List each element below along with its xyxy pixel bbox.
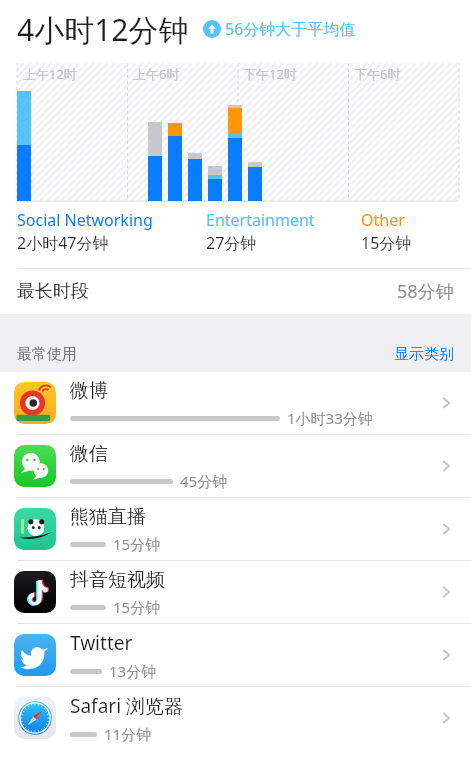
staticText: 微博 bbox=[70, 379, 108, 403]
staticText: Entertainment bbox=[206, 209, 315, 231]
staticText: 最长时段 bbox=[17, 280, 89, 303]
staticText: 显示类别 bbox=[394, 345, 454, 364]
staticText: 上午12时 bbox=[23, 65, 77, 83]
staticText: 下午6时 bbox=[354, 65, 401, 83]
staticText: 45分钟 bbox=[180, 471, 228, 491]
button[interactable]: 抖音短视频 bbox=[0, 561, 471, 623]
staticText: 4小时12分钟 bbox=[17, 9, 189, 50]
button[interactable]: Twitter bbox=[0, 624, 471, 686]
button[interactable]: Safari 浏览器 bbox=[0, 687, 471, 749]
staticText: 27分钟 bbox=[206, 232, 257, 254]
other: Open 抖音短视频 details bbox=[435, 581, 457, 603]
staticText: Other bbox=[361, 209, 405, 231]
staticText: 1小时33分钟 bbox=[287, 408, 373, 428]
other: Open 熊猫直播 details bbox=[435, 518, 457, 540]
staticText: 熊猫直播 bbox=[70, 505, 146, 529]
staticText: 抖音短视频 bbox=[70, 568, 165, 592]
staticText: 上午6时 bbox=[133, 65, 180, 83]
button[interactable]: 熊猫直播 bbox=[0, 498, 471, 560]
staticText: 56分钟大于平均值 bbox=[225, 18, 356, 40]
other: Open 微信 details bbox=[435, 455, 457, 477]
staticText: 15分钟 bbox=[113, 597, 161, 617]
other: Open 微博 details bbox=[435, 392, 457, 414]
staticText: Social Networking bbox=[17, 209, 153, 231]
staticText: 58分钟 bbox=[397, 279, 454, 304]
other: Open Safari 浏览器 details bbox=[435, 707, 457, 729]
staticText: 下午12时 bbox=[243, 65, 297, 83]
staticText: Safari 浏览器 bbox=[70, 693, 183, 719]
other: Open Twitter details bbox=[435, 644, 457, 666]
staticText: 2小时47分钟 bbox=[17, 232, 109, 254]
staticText: 微信 bbox=[70, 442, 108, 466]
button[interactable]: 微博 bbox=[0, 372, 471, 434]
staticText: 11分钟 bbox=[104, 724, 152, 744]
staticText: Twitter bbox=[70, 630, 133, 656]
staticText: 15分钟 bbox=[361, 232, 412, 254]
staticText: 最常使用 bbox=[17, 345, 77, 364]
button[interactable]: 微信 bbox=[0, 435, 471, 497]
button[interactable]: 显示类别 bbox=[394, 345, 454, 364]
staticText: 15分钟 bbox=[113, 534, 161, 554]
staticText: 13分钟 bbox=[109, 661, 157, 681]
button[interactable]: 最长时段 bbox=[0, 269, 471, 314]
